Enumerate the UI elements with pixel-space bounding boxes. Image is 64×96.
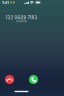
- staticText: 9:41: [2, 0, 9, 5]
- button[interactable]: Decline: [5, 75, 14, 84]
- staticText: mobile: [16, 19, 27, 23]
- button[interactable]: Accept: [29, 75, 38, 84]
- staticText: 132 0609 7183: [5, 15, 37, 20]
